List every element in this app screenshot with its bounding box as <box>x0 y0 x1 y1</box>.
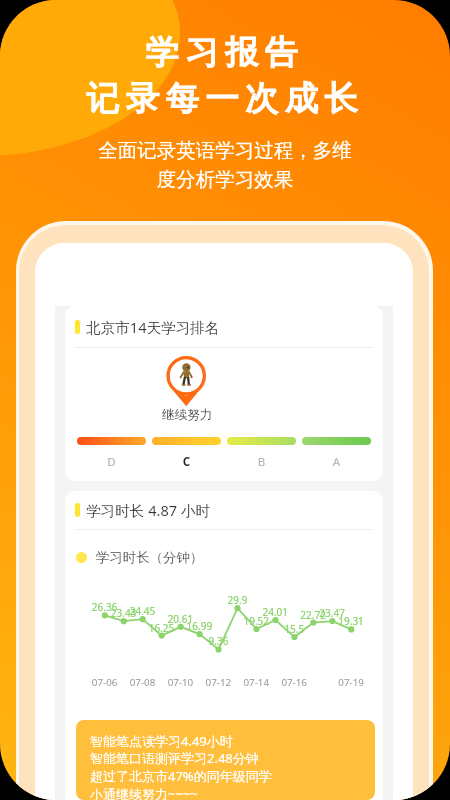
staticText: B <box>227 454 296 470</box>
button[interactable]: 智能笔点读学习4.49小时 智能笔口语测评学习2.48分钟 超过了北京市47%的… <box>76 720 375 800</box>
button[interactable]: 学习时长 4.87 小时 <box>65 491 383 800</box>
staticText: C <box>152 454 221 470</box>
button[interactable]: 北京市14天学习排名 <box>65 306 383 481</box>
staticText: D <box>77 454 146 470</box>
staticText: 全面记录英语学习过程，多维 度分析学习效果 <box>0 138 450 192</box>
staticText: 智能笔点读学习4.49小时 智能笔口语测评学习2.48分钟 超过了北京市47%的… <box>90 732 272 800</box>
staticText: 继续努力 <box>162 407 383 423</box>
staticText: A <box>302 454 371 470</box>
staticText: 北京市14天学习排名 <box>86 317 220 337</box>
staticText: 学习时长（分钟） <box>96 549 204 566</box>
other: Rank marker <box>166 356 207 407</box>
staticText: 学习报告 <box>0 32 450 74</box>
staticText: 学习时长 4.87 小时 <box>86 500 211 520</box>
staticText: 记录每一次成长 <box>0 78 450 120</box>
